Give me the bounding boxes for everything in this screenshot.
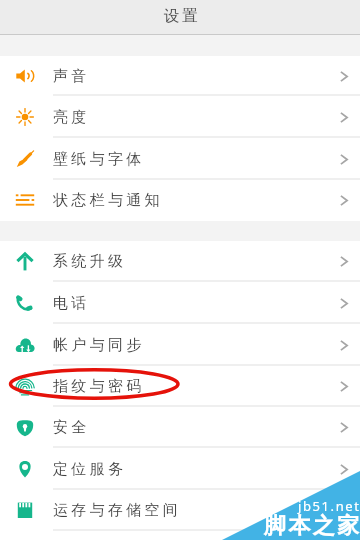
button[interactable]: 系统升级 bbox=[0, 241, 360, 282]
staticText: 电话 bbox=[53, 294, 90, 313]
button[interactable]: 壁纸与字体 bbox=[0, 138, 360, 180]
staticText: 指纹与密码 bbox=[53, 377, 145, 396]
staticText: 帐户与同步 bbox=[53, 336, 145, 355]
button[interactable]: 电话 bbox=[0, 282, 360, 324]
button[interactable]: 安全 bbox=[0, 407, 360, 448]
button[interactable]: 声音 bbox=[0, 56, 360, 96]
staticText: 状态栏与通知 bbox=[53, 191, 163, 210]
button[interactable]: 状态栏与通知 bbox=[0, 179, 360, 221]
staticText: 设置 bbox=[164, 6, 201, 26]
button[interactable]: 亮度 bbox=[0, 96, 360, 138]
button[interactable]: 帐户与同步 bbox=[0, 324, 360, 366]
staticText: 壁纸与字体 bbox=[53, 150, 145, 169]
staticText: 脚本之家 bbox=[264, 512, 360, 540]
staticText: 声音 bbox=[53, 67, 90, 86]
button[interactable]: 定位服务 bbox=[0, 448, 360, 490]
staticText: jb51.net bbox=[298, 497, 360, 515]
button[interactable]: 运存与存储空间 bbox=[0, 489, 360, 531]
staticText: 系统升级 bbox=[53, 252, 127, 271]
button[interactable]: 指纹与密码 bbox=[0, 365, 360, 407]
staticText: 运存与存储空间 bbox=[53, 501, 182, 520]
staticText: 定位服务 bbox=[53, 460, 127, 479]
staticText: 安全 bbox=[53, 418, 90, 437]
staticText: 亮度 bbox=[53, 108, 90, 127]
